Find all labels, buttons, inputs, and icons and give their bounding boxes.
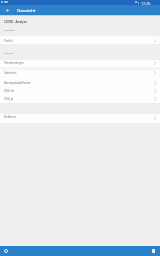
staticText: ALGEMEEN bbox=[4, 29, 15, 32]
staticText: VOG ok bbox=[4, 89, 15, 93]
button[interactable]: VOG ok bbox=[0, 87, 160, 95]
button[interactable]: Back bbox=[0, 5, 14, 15]
staticText: Verzekeringen bbox=[4, 61, 24, 65]
staticText: Beroepskwalificatie bbox=[4, 81, 31, 85]
button[interactable]: Paspoort bbox=[0, 36, 160, 44]
staticText: 17:35 bbox=[141, 1, 151, 6]
button[interactable]: Verzekeringen bbox=[0, 60, 160, 67]
button[interactable]: Back bbox=[0, 246, 11, 256]
staticText: Profiel bbox=[4, 39, 13, 43]
staticText: Overzicht bbox=[17, 8, 36, 13]
button[interactable]: Recent apps bbox=[149, 246, 160, 256]
staticText: ASPECTEN bbox=[4, 52, 14, 55]
staticText: COVID - Analyse bbox=[4, 20, 27, 24]
staticText: VOG ja bbox=[4, 97, 14, 101]
button[interactable]: VOG ja bbox=[0, 95, 160, 103]
staticText: Debiteur bbox=[4, 115, 16, 119]
staticText: Identiteit bbox=[4, 71, 17, 75]
button[interactable]: Debiteur bbox=[0, 114, 160, 123]
button[interactable]: Identiteit bbox=[0, 70, 160, 78]
button[interactable]: Beroepskwalificatie bbox=[0, 79, 160, 87]
